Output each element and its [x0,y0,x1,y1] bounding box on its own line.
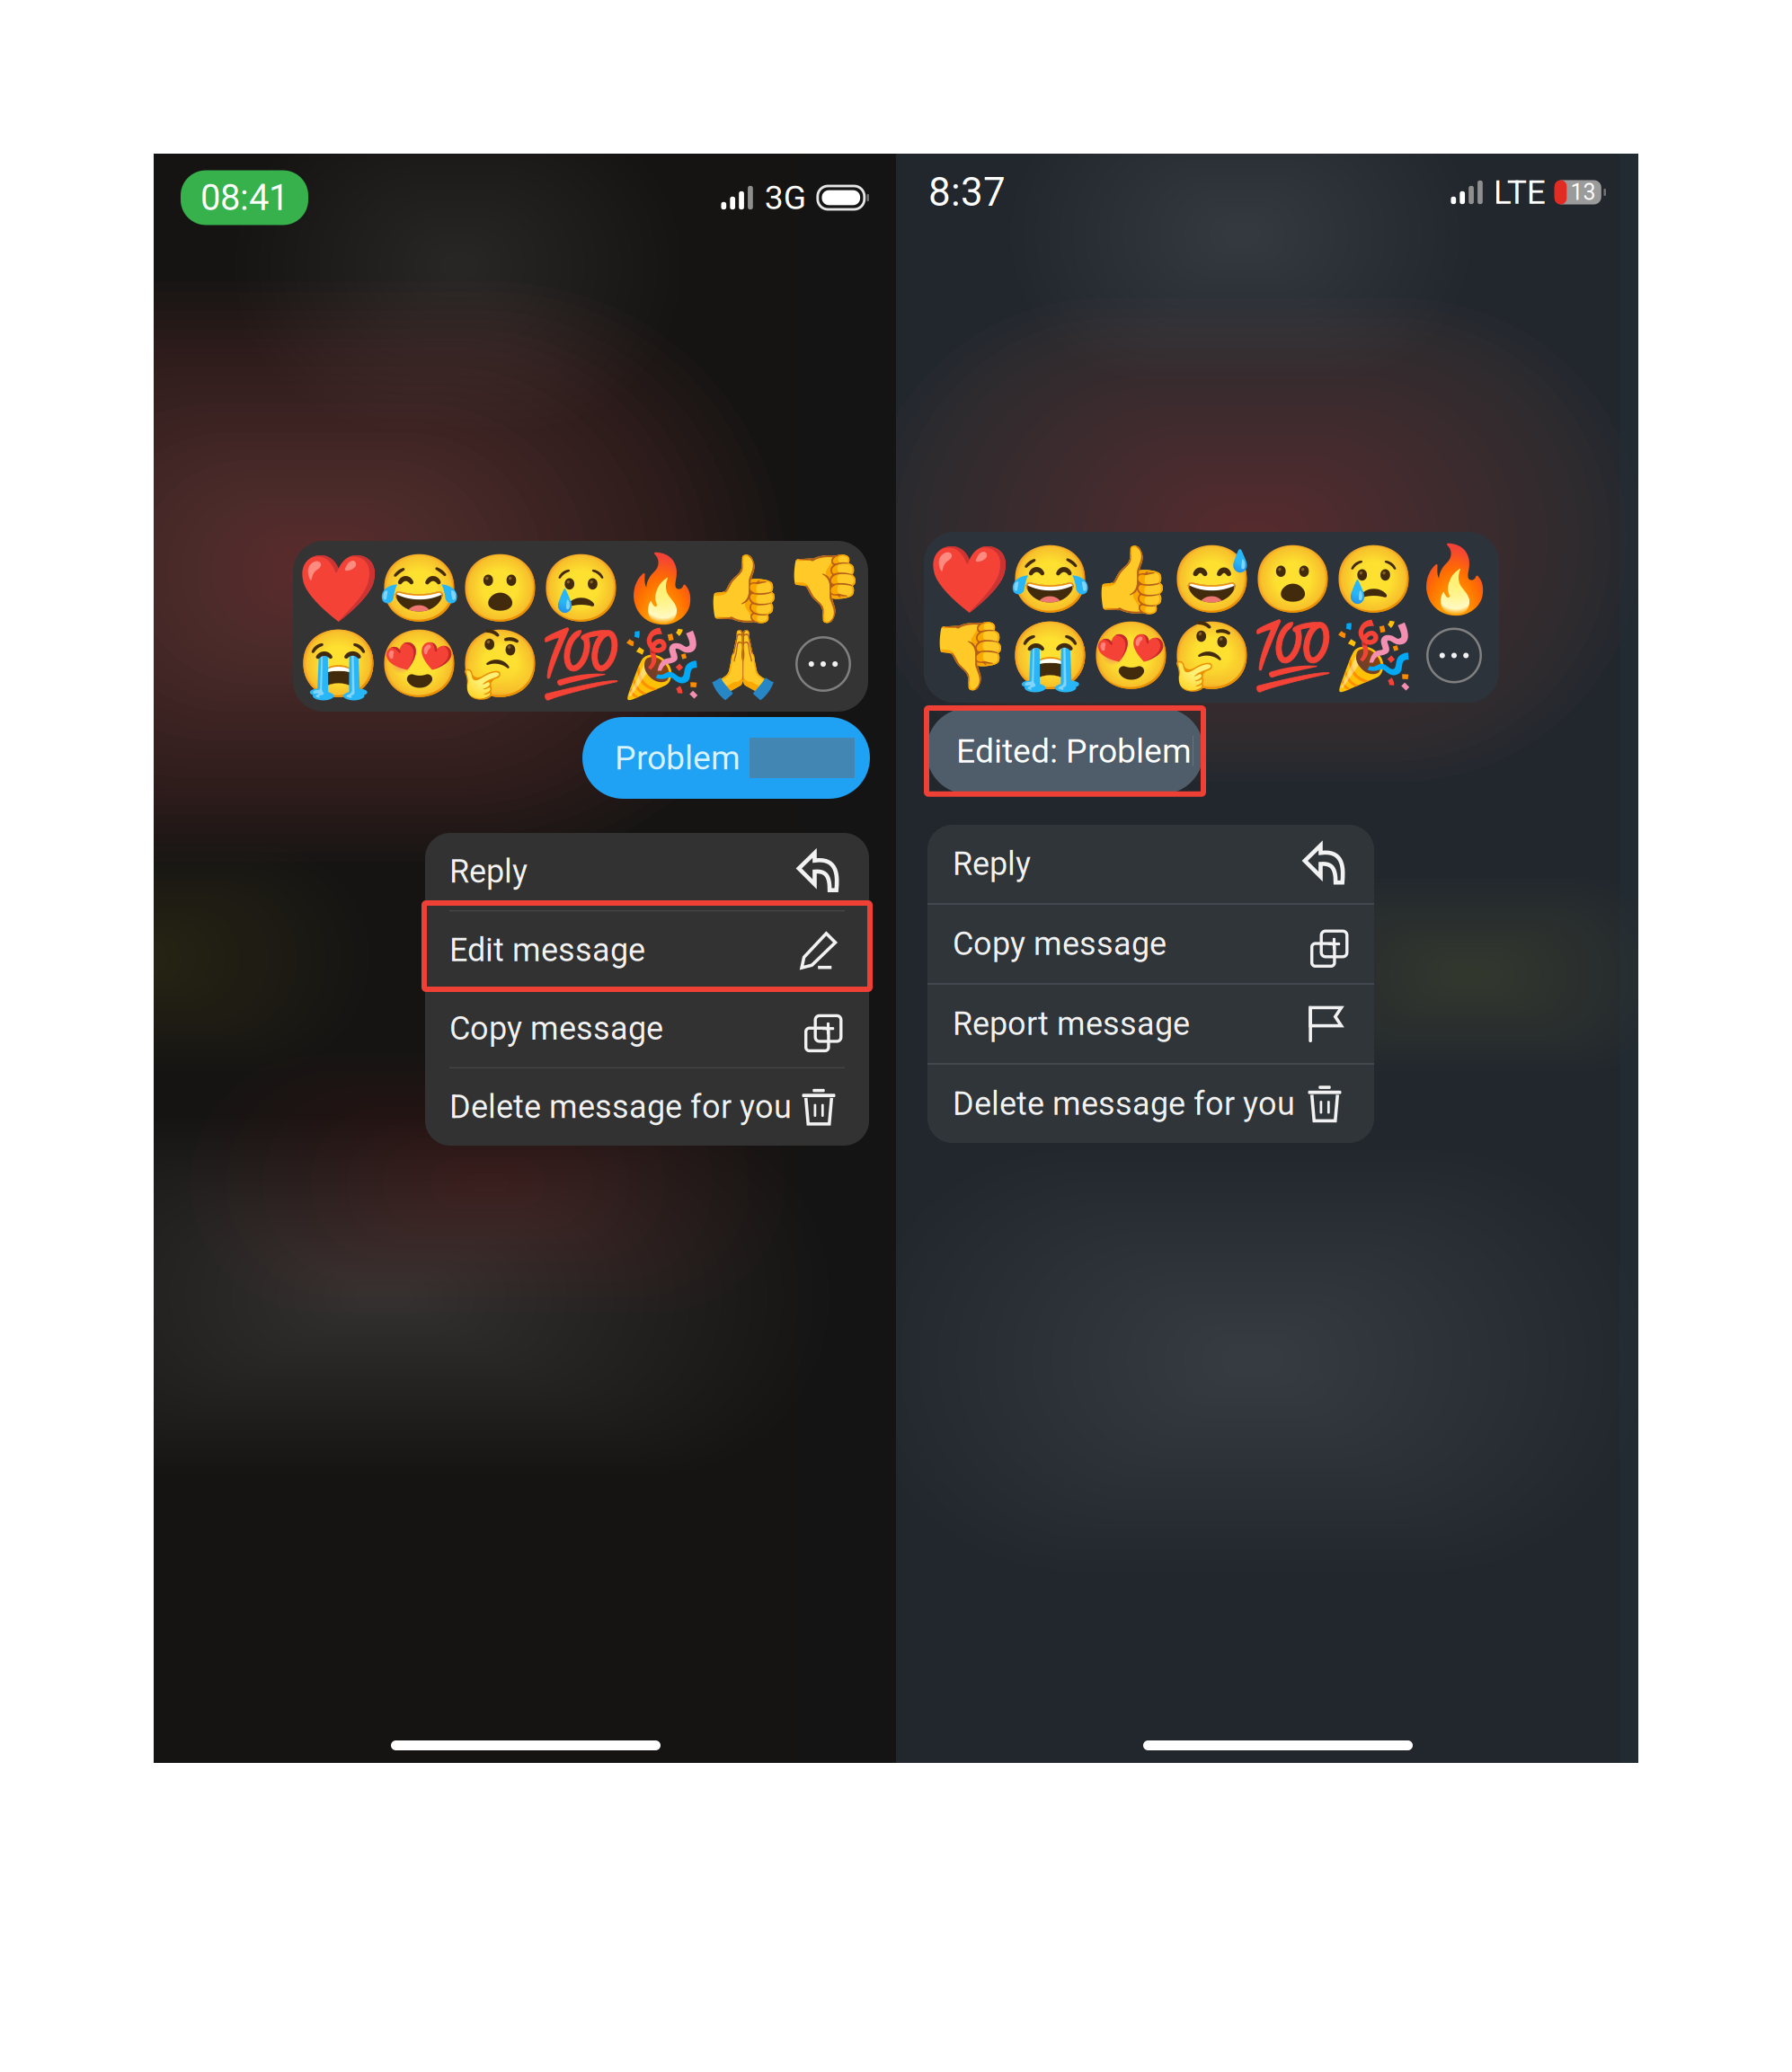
staticText: Report message [953,1005,1190,1043]
button[interactable]: React [621,629,702,699]
staticText: Problem [615,738,741,777]
staticText: 😂 [378,551,460,626]
staticText: 😮 [459,551,541,626]
staticText: 🎉 [1332,618,1414,693]
button[interactable]: React [928,544,1009,615]
staticText: 😢 [540,551,621,626]
staticText: Edit message [449,931,645,969]
button[interactable]: React [297,629,378,699]
staticText: 👎 [928,618,1010,693]
staticText: 😢 [1332,541,1414,617]
button[interactable]: React [540,629,621,699]
staticText: Delete message for you [953,1085,1295,1123]
staticText: 😭 [1009,618,1091,693]
button[interactable]: React [1252,620,1333,691]
button[interactable]: React [783,553,864,624]
button[interactable]: React [1009,620,1090,691]
button[interactable]: More reactions [1414,620,1495,691]
button[interactable]: React [1414,544,1495,615]
staticText: 💯 [540,626,621,702]
staticText: 13 [1570,179,1596,205]
button[interactable]: Copy message [425,990,869,1067]
staticText: 🔥 [1413,541,1495,617]
staticText: Reply [953,845,1031,883]
staticText: 8:37 [928,169,1006,215]
staticText: 08:41 [200,177,288,219]
staticText: ❤️ [297,551,379,626]
button[interactable]: Edited: Problem [927,708,1203,794]
staticText: 😅 [1171,541,1252,617]
button[interactable]: Delete message for you [927,1065,1374,1143]
staticText: LTE [1493,173,1546,212]
button[interactable]: React [378,553,459,624]
button[interactable]: Copy message [927,905,1374,983]
staticText: 👍 [1090,541,1171,617]
staticText: 👍 [701,551,783,626]
staticText: 😮 [1251,541,1333,617]
staticText: Copy message [449,1010,663,1048]
button[interactable]: React [702,553,783,624]
button[interactable]: More reactions [783,629,864,699]
staticText: 🙏 [701,626,783,702]
button[interactable]: React [1090,544,1171,615]
button[interactable]: React [1090,620,1171,691]
staticText: 3G [765,178,806,217]
staticText: 😂 [1009,541,1091,617]
staticText: 🔥 [621,551,702,626]
button[interactable]: Problem [582,717,870,799]
staticText: 🤔 [1171,618,1252,693]
button[interactable]: React [928,620,1009,691]
button[interactable]: React [1333,544,1414,615]
button[interactable]: React [459,553,540,624]
staticText: 😍 [1090,618,1171,693]
staticText: 🤔 [459,626,541,702]
button[interactable]: React [702,629,783,699]
button[interactable]: Report message [927,985,1374,1063]
button[interactable]: React [1171,544,1252,615]
staticText: 😭 [297,626,379,702]
staticText: ❤️ [928,541,1010,617]
button[interactable]: React [540,553,621,624]
button[interactable]: React [1171,620,1252,691]
staticText: 💯 [1251,618,1333,693]
staticText: Copy message [953,925,1167,963]
button[interactable]: Edit message [425,911,869,989]
staticText: Reply [449,853,528,891]
staticText: Edited: Problem [956,731,1192,771]
button[interactable]: Delete message for you [425,1068,869,1146]
staticText: Delete message for you [449,1088,792,1126]
button[interactable]: React [1009,544,1090,615]
staticText: 😍 [378,626,460,702]
button[interactable]: React [378,629,459,699]
button[interactable]: React [297,553,378,624]
staticText: 👎 [782,551,864,626]
button[interactable]: React [459,629,540,699]
button[interactable]: React [1333,620,1414,691]
button[interactable]: React [621,553,702,624]
staticText: 🎉 [621,626,702,702]
button[interactable]: Reply [425,833,869,910]
button[interactable]: React [1252,544,1333,615]
button[interactable]: Reply [927,825,1374,903]
